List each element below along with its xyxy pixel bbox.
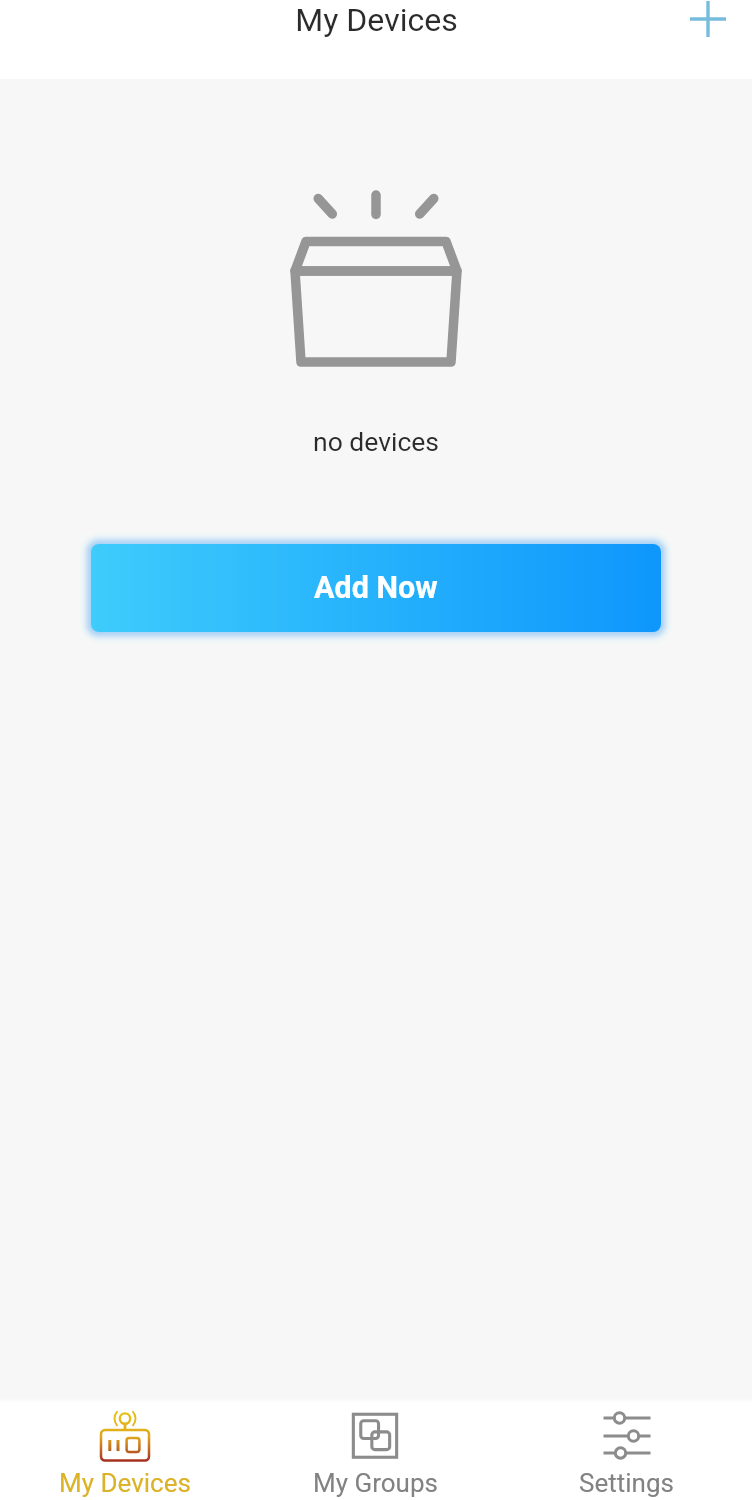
staticText: no devices [313,426,440,457]
button[interactable]: Add Now [91,544,661,632]
staticText: Settings [579,1468,674,1498]
staticText: Add Now [314,570,438,606]
button[interactable]: Add device [670,0,746,60]
staticText: My Devices [59,1468,191,1498]
staticText: My Groups [313,1468,438,1498]
button[interactable]: My Devices [0,1403,250,1498]
button[interactable]: My Groups [250,1403,501,1498]
button[interactable]: Settings [501,1403,752,1498]
staticText: My Devices [295,1,458,39]
